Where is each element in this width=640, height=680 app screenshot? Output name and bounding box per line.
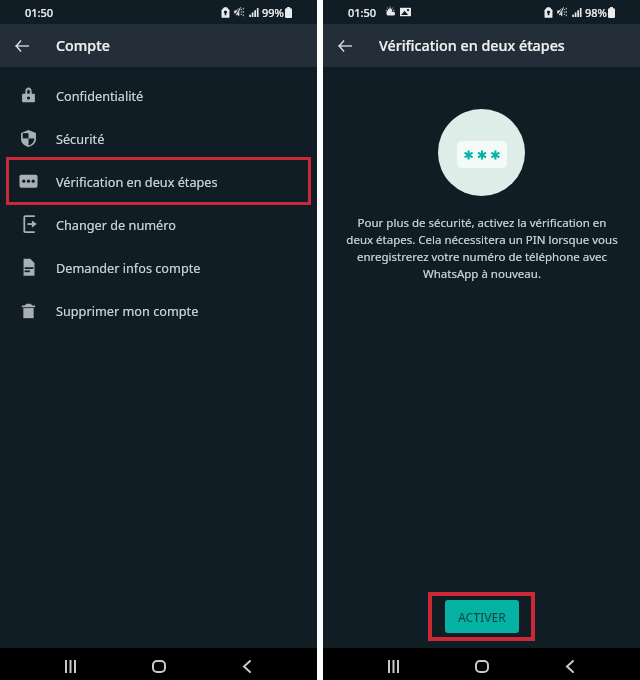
button[interactable]: Supprimer mon compte	[0, 289, 317, 332]
staticText: 01:50	[348, 5, 377, 20]
button[interactable]: Back	[0, 24, 44, 67]
staticText: Compte	[56, 36, 110, 55]
button[interactable]: Demander infos compte	[0, 246, 317, 289]
button[interactable]: Home	[140, 652, 177, 680]
staticText: Vérification en deux étapes	[379, 36, 565, 55]
staticText: 98%	[585, 5, 607, 20]
staticText: Sécurité	[56, 130, 105, 147]
button[interactable]: Home	[463, 652, 500, 680]
staticText: Changer de numéro	[56, 216, 176, 233]
button[interactable]: Back	[177, 652, 317, 680]
button[interactable]: Back	[323, 24, 367, 67]
button[interactable]: Changer de numéro	[0, 203, 317, 246]
button[interactable]: Confidentialité	[0, 74, 317, 117]
staticText: Demander infos compte	[56, 259, 201, 276]
button[interactable]: Sécurité	[0, 117, 317, 160]
staticText: Confidentialité	[56, 87, 144, 104]
button[interactable]: Back	[500, 652, 640, 680]
button[interactable]: Recent apps	[0, 652, 140, 680]
button[interactable]: Recent apps	[323, 652, 463, 680]
staticText: Pour plus de sécurité, activez la vérifi…	[345, 215, 619, 281]
staticText: ACTIVER	[458, 609, 506, 625]
button[interactable]: ACTIVER	[445, 600, 519, 633]
staticText: 99%	[262, 5, 284, 20]
staticText: 01:50	[25, 5, 54, 20]
button[interactable]: Vérification en deux étapes	[0, 160, 317, 203]
staticText: Vérification en deux étapes	[56, 173, 218, 190]
staticText: Supprimer mon compte	[56, 302, 199, 319]
